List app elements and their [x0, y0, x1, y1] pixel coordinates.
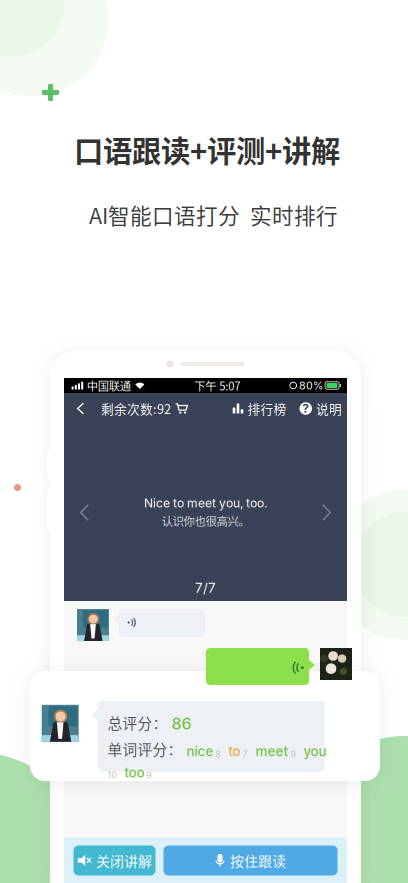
- staticText: 80%: [299, 379, 323, 392]
- button[interactable]: 返回: [70, 394, 91, 422]
- staticText: ?: [302, 401, 309, 416]
- staticText: 8: [213, 749, 220, 759]
- button[interactable]: 下一句: [312, 494, 341, 531]
- staticText: too: [116, 764, 144, 781]
- staticText: meet: [247, 743, 288, 759]
- staticText: 剩余次数:92: [101, 399, 171, 418]
- staticText: nice: [182, 743, 213, 759]
- staticText: 9: [144, 770, 151, 781]
- staticText: 7: [240, 749, 247, 759]
- staticText: 85: [172, 712, 188, 728]
- staticText: 单词评分：: [107, 738, 182, 759]
- staticText: nice: [184, 733, 208, 747]
- staticText: 排行榜: [247, 399, 286, 418]
- staticText: AI智能口语打分 实时排行: [89, 199, 338, 230]
- staticText: 总评分：: [107, 712, 167, 733]
- staticText: Nice to meet you, too.: [144, 496, 267, 510]
- button[interactable]: 上一句: [70, 494, 99, 531]
- staticText: 9: [288, 749, 295, 759]
- staticText: to: [220, 743, 240, 759]
- staticText: 关闭讲解: [96, 850, 152, 871]
- staticText: meet: [225, 733, 254, 747]
- staticText: you: [295, 743, 326, 759]
- staticText: 中国联通: [87, 377, 131, 394]
- staticText: 10: [107, 770, 116, 781]
- staticText: 说明: [316, 399, 342, 418]
- staticText: 单词评分：: [124, 731, 184, 749]
- button[interactable]: 排行榜: [232, 393, 286, 424]
- staticText: 总评分：: [124, 711, 172, 728]
- button[interactable]: ?: [286, 393, 342, 424]
- staticText: 86: [167, 714, 191, 733]
- button[interactable]: 关闭讲解: [73, 845, 155, 875]
- staticText: 按住跟读: [230, 850, 286, 871]
- staticText: 下午 5:07: [194, 377, 240, 394]
- staticText: 口语跟读+评测+讲解: [74, 128, 340, 170]
- staticText: 认识你也很高兴。: [161, 512, 249, 529]
- button[interactable]: 按住跟读: [163, 845, 337, 875]
- staticText: 7/7: [195, 580, 216, 596]
